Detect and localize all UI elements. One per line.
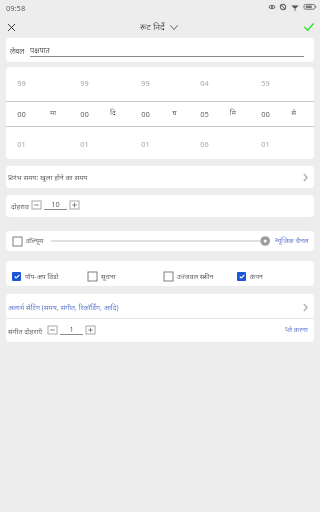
staticText: से — [291, 108, 296, 118]
button[interactable]: Close — [2, 18, 21, 37]
staticText: प्ले करना — [285, 325, 308, 335]
staticText: पॉप-अप विंडो — [25, 272, 59, 281]
staticText: 05 — [200, 109, 209, 119]
staticText: 06 — [200, 139, 209, 149]
button[interactable]: प्ले करना — [284, 324, 309, 336]
staticText: लेबल — [10, 46, 25, 56]
staticText: मा — [50, 108, 56, 118]
staticText: 09:58 — [6, 3, 26, 13]
staticText: 99 — [17, 78, 26, 88]
staticText: 01 — [141, 139, 150, 149]
staticText: 00 — [80, 109, 89, 119]
staticText: वॉल्यूम — [26, 236, 44, 246]
staticText: म्यूजिक चैनल — [275, 236, 309, 246]
button[interactable]: प्रारंभ समय: खुला होने का समय — [6, 166, 314, 188]
button[interactable]: रूट निर्दे — [140, 21, 178, 33]
staticText: रूट निर्दे — [140, 21, 165, 33]
button[interactable]: Decrease — [48, 326, 57, 334]
staticText: घ — [172, 108, 177, 118]
button[interactable]: म्यूजिक चैनल — [274, 235, 310, 247]
staticText: 10 — [51, 199, 60, 209]
staticText: 01 — [80, 139, 89, 149]
staticText: 99 — [141, 78, 150, 88]
button[interactable]: सूचना — [85, 269, 119, 284]
staticText: दोहराव — [11, 202, 29, 212]
button[interactable]: Decrease — [32, 201, 41, 209]
staticText: प्रारंभ समय: खुला होने का समय — [8, 173, 88, 183]
button[interactable]: Increase — [86, 326, 95, 334]
staticText: 01 — [261, 139, 270, 149]
button[interactable]: Confirm — [300, 18, 318, 36]
staticText: दि — [110, 108, 116, 118]
staticText: कंपन — [250, 272, 263, 281]
staticText: पक्षपात — [30, 45, 50, 55]
staticText: मि — [230, 108, 236, 118]
staticText: 59 — [261, 78, 270, 88]
staticText: 04 — [200, 78, 209, 88]
staticText: अलार्म सेटिंग (समय, संगीत, रिकॉर्डिंग, आ… — [8, 303, 119, 313]
staticText: 99 — [80, 78, 89, 88]
staticText: 00 — [261, 109, 270, 119]
button[interactable]: उज्जवल स्क्रीन — [161, 269, 217, 284]
staticText: 00 — [141, 109, 150, 119]
staticText: उज्जवल स्क्रीन — [177, 272, 214, 281]
staticText: संगीत दोहराएँ — [8, 327, 43, 337]
staticText: 1 — [69, 324, 74, 334]
staticText: सूचना — [101, 272, 116, 281]
button[interactable]: वॉल्यूम — [13, 234, 44, 248]
button[interactable]: Increase — [70, 201, 79, 209]
staticText: 01 — [17, 139, 26, 149]
button[interactable]: कंपन — [234, 269, 266, 284]
button[interactable]: पॉप-अप विंडो — [9, 269, 62, 284]
staticText: 00 — [17, 109, 26, 119]
button[interactable]: अलार्म सेटिंग (समय, संगीत, रिकॉर्डिंग, आ… — [6, 294, 314, 318]
